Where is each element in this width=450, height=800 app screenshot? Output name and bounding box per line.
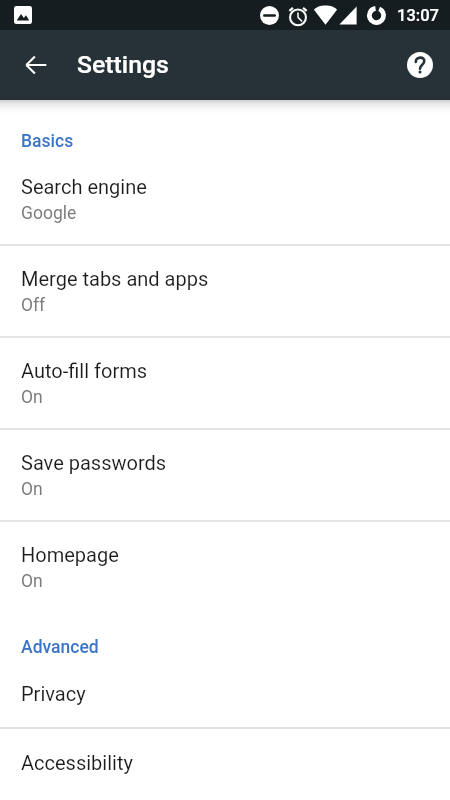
staticText: Basics (21, 131, 74, 152)
staticText: 13:07 (397, 6, 439, 25)
staticText: Auto-fill forms (21, 359, 148, 382)
button[interactable]: Search engine (0, 175, 450, 244)
staticText: On (21, 479, 43, 500)
button[interactable]: Privacy (0, 682, 450, 727)
button[interactable]: Accessibility (0, 729, 450, 794)
staticText: Privacy (21, 682, 86, 705)
staticText: On (21, 571, 43, 592)
staticText: Merge tabs and apps (21, 267, 209, 290)
staticText: Homepage (21, 543, 119, 566)
staticText: Off (21, 295, 46, 316)
staticText: Save passwords (21, 451, 167, 474)
staticText: Search engine (21, 175, 147, 198)
staticText: Settings (77, 50, 169, 79)
button[interactable]: Homepage (0, 522, 450, 612)
staticText: Google (21, 203, 77, 224)
button[interactable]: Navigate up (12, 41, 60, 89)
button[interactable]: Save passwords (0, 430, 450, 520)
staticText: Accessibility (21, 751, 133, 774)
button[interactable]: Merge tabs and apps (0, 246, 450, 336)
button[interactable]: Help (396, 41, 444, 89)
staticText: On (21, 387, 43, 408)
button[interactable]: Auto-fill forms (0, 338, 450, 428)
staticText: Advanced (21, 637, 99, 658)
